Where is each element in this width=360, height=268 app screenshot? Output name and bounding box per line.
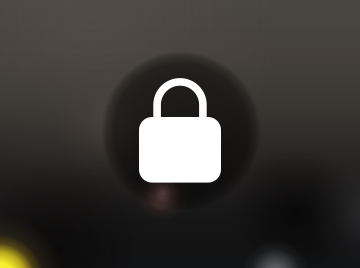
button[interactable]: Unlock <box>0 0 360 268</box>
